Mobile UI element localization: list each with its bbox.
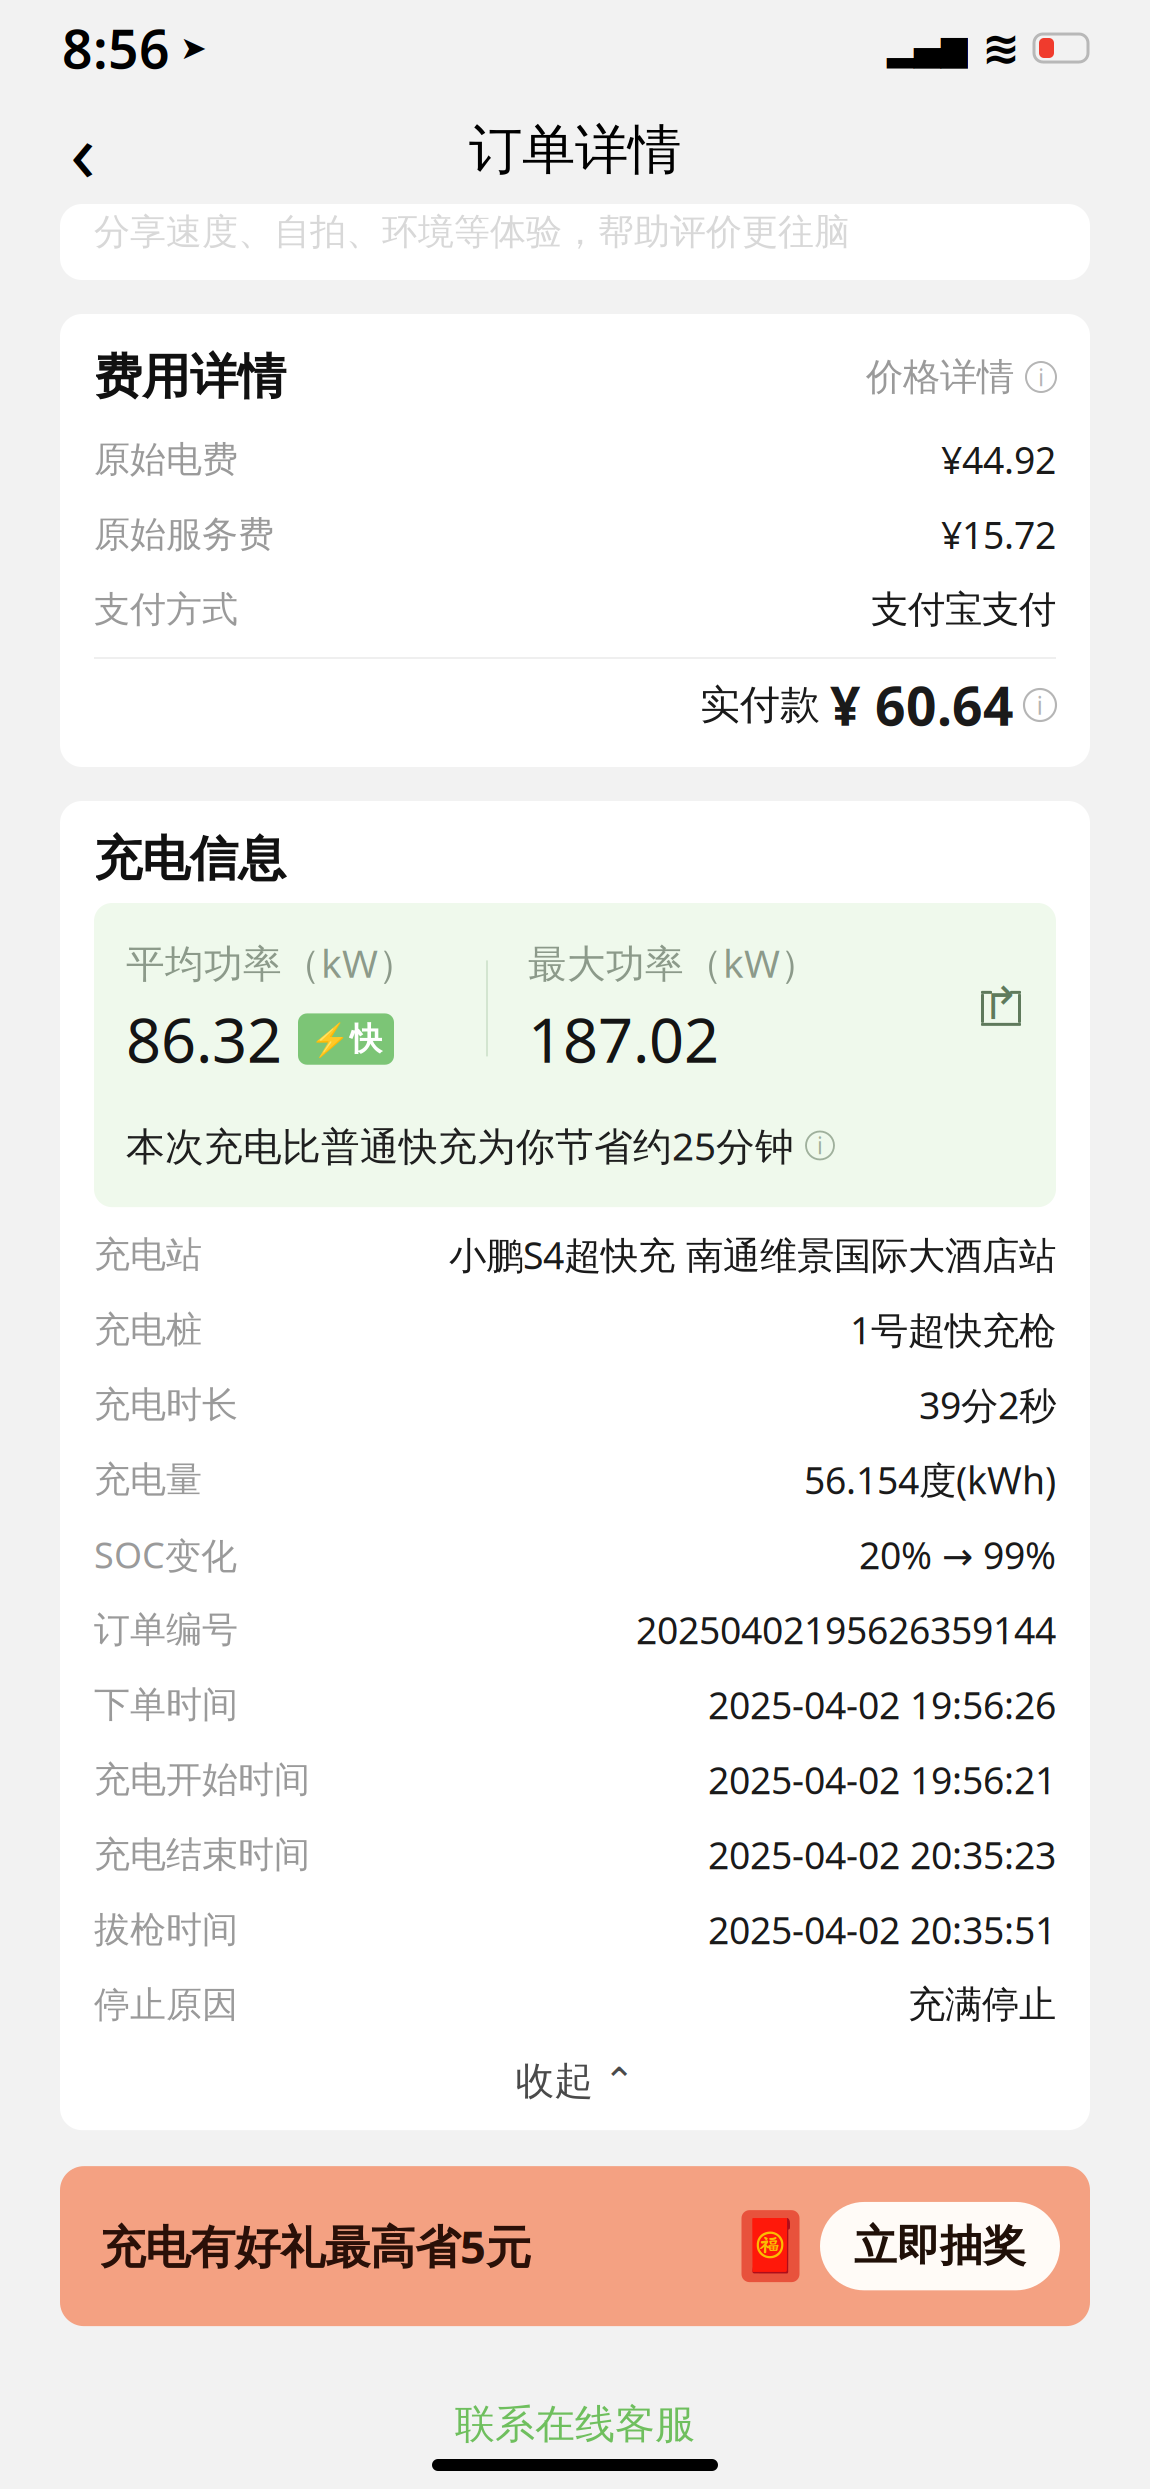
staticText: 2025-04-02 19:56:26 — [708, 1680, 1056, 1729]
staticText: 实付款 — [700, 680, 820, 729]
staticText: 充电开始时间 — [94, 1757, 310, 1802]
staticText: 原始电费 — [94, 437, 238, 482]
staticText: ⚡快 — [310, 1019, 382, 1059]
staticText: 充电结束时间 — [94, 1832, 310, 1877]
button[interactable]: 实付款说明 — [1024, 689, 1056, 721]
staticText: 充电有好礼最高省5元 — [100, 2216, 531, 2276]
staticText: ¥44.92 — [941, 435, 1056, 484]
button[interactable]: 充电有好礼最高省5元 — [60, 2166, 1090, 2326]
staticText: 39分2秒 — [919, 1380, 1056, 1429]
staticText: 联系在线客服 — [455, 2400, 695, 2449]
staticText: ≋ — [982, 22, 1020, 74]
staticText: 停止原因 — [94, 1982, 238, 2027]
staticText: 充电信息 — [94, 829, 286, 888]
staticText: 费用详情 — [94, 347, 286, 406]
staticText: i — [1036, 688, 1043, 722]
staticText: 86.32 — [126, 998, 282, 1080]
button[interactable]: 收起 — [94, 2042, 1056, 2120]
staticText: 最大功率（kW） — [528, 937, 819, 988]
staticText: 2025-04-02 20:35:23 — [708, 1830, 1056, 1879]
staticText: 2025-04-02 19:56:21 — [708, 1755, 1056, 1804]
staticText: 小鹏S4超快充 南通维景国际大酒店站 — [449, 1230, 1056, 1279]
staticText: 2025-04-02 20:35:51 — [708, 1905, 1056, 1954]
staticText: i — [1038, 361, 1044, 393]
staticText: ↱ — [982, 978, 1020, 1029]
staticText: 20250402195626359144 — [636, 1605, 1056, 1654]
staticText: 充满停止 — [908, 1982, 1056, 2028]
staticText: 充电桩 — [94, 1307, 202, 1352]
staticText: ⌃ — [603, 2060, 634, 2102]
staticText: 8:56 — [62, 13, 170, 83]
staticText: 🧧 — [739, 2217, 802, 2275]
staticText: ➤ — [180, 30, 207, 66]
staticText: 分享速度、自拍、环境等体验，帮助评价更往脑 — [94, 210, 850, 254]
staticText: 支付宝支付 — [871, 587, 1056, 632]
button[interactable]: Back — [38, 105, 128, 195]
staticText: 订单编号 — [94, 1607, 238, 1652]
staticText: 支付方式 — [94, 587, 238, 632]
staticText: ¥ 60.64 — [830, 670, 1014, 740]
staticText: 立即抽奖 — [854, 2220, 1026, 2272]
staticText: i — [817, 1130, 823, 1160]
staticText: ¥15.72 — [941, 510, 1056, 559]
staticText: 本次充电比普通快充为你节省约25分钟 — [126, 1120, 794, 1171]
staticText: 订单详情 — [469, 117, 681, 183]
staticText: 充电时长 — [94, 1382, 238, 1427]
staticText: 56.154度(kWh) — [804, 1455, 1056, 1504]
staticText: 价格详情 — [866, 354, 1014, 400]
staticText: SOC变化 — [94, 1531, 237, 1579]
button[interactable]: 分享充电表现 — [978, 985, 1024, 1031]
staticText: 下单时间 — [94, 1682, 238, 1727]
staticText: 平均功率（kW） — [126, 937, 417, 988]
button[interactable]: 价格详情 — [866, 354, 1056, 400]
staticText: 1号超快充枪 — [850, 1305, 1056, 1354]
staticText: 20% → 99% — [859, 1530, 1056, 1579]
staticText: ▂▄▆ — [887, 28, 968, 68]
staticText: 充电量 — [94, 1457, 202, 1502]
staticText: ‹ — [70, 95, 96, 205]
staticText: 187.02 — [528, 998, 719, 1080]
staticText: 充电站 — [94, 1232, 202, 1277]
staticText: 拔枪时间 — [94, 1907, 238, 1952]
staticText: 原始服务费 — [94, 512, 274, 557]
staticText: 收起 — [515, 2057, 593, 2105]
